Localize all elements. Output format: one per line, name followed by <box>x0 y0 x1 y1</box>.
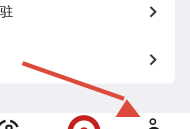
button[interactable]: 驻 <box>0 0 175 36</box>
button[interactable]: Scan <box>0 117 24 129</box>
button[interactable]: Post <box>70 118 98 129</box>
button[interactable]: Me <box>141 116 165 129</box>
button[interactable] <box>0 36 175 84</box>
staticText: 驻 <box>0 4 13 20</box>
